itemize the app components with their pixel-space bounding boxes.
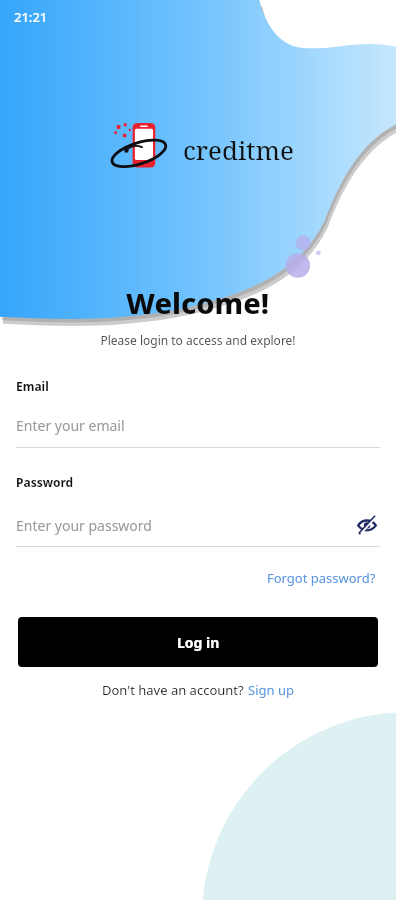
staticText: Email [16, 378, 49, 394]
button[interactable]: Show password [354, 512, 380, 538]
staticText: Enter your email [16, 416, 125, 435]
button[interactable]: Forgot password? [263, 565, 380, 591]
staticText: 21:21 [14, 8, 48, 26]
staticText: Please login to access and explore! [100, 332, 296, 348]
staticText: Password [16, 474, 74, 490]
staticText: Welcome! [126, 283, 270, 322]
staticText: Log in [177, 633, 220, 652]
staticText: Forgot password? [267, 569, 376, 587]
button[interactable]: Log in [18, 617, 378, 667]
button[interactable]: Enter your password [16, 512, 380, 538]
button[interactable]: Enter your email [16, 416, 380, 435]
staticText: Enter your password [16, 516, 152, 535]
button[interactable]: Sign up [248, 681, 294, 699]
staticText: Don't have an account? [102, 681, 248, 699]
staticText: creditme [183, 132, 294, 167]
staticText: Sign up [248, 681, 294, 699]
